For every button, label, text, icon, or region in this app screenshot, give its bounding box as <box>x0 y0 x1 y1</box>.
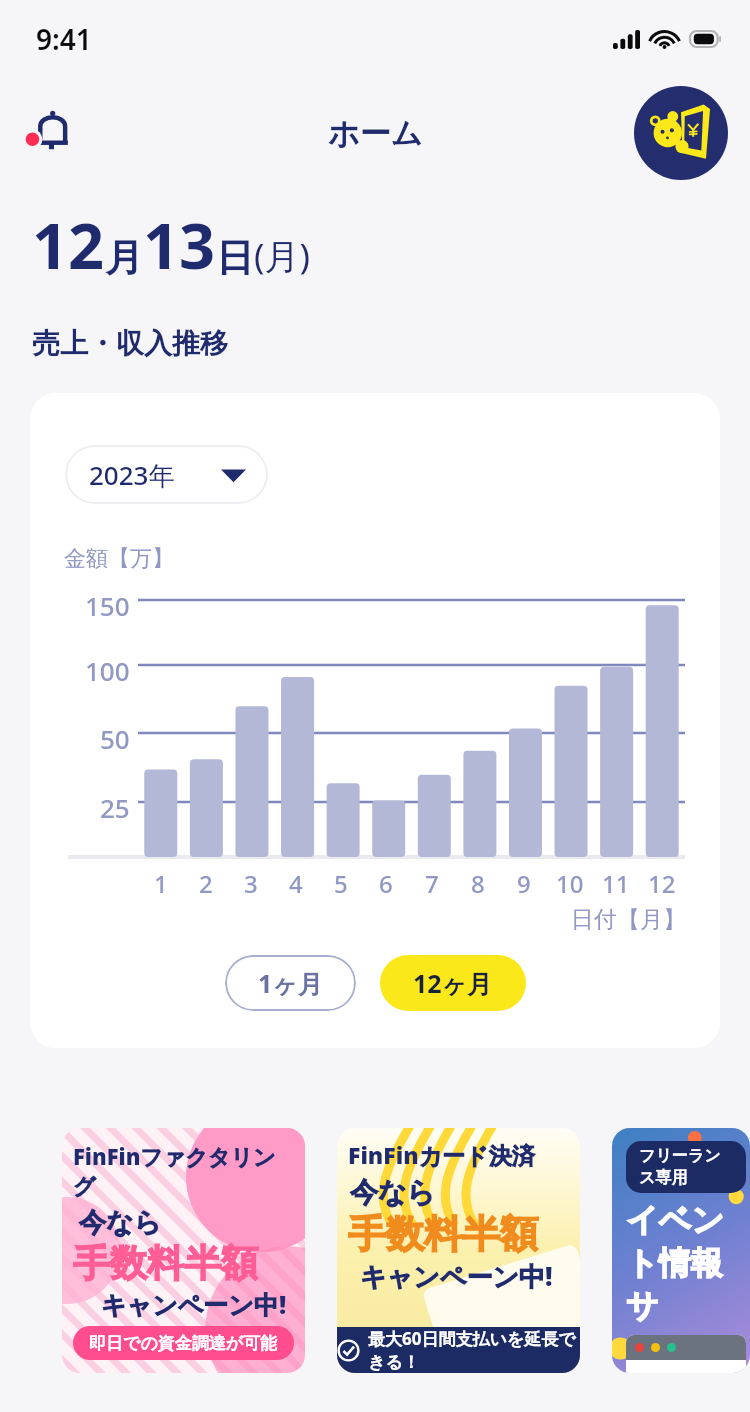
staticText: 1ヶ月 <box>258 966 323 1000</box>
staticText: イベント情報サ <box>626 1200 746 1327</box>
staticText: (月) <box>254 232 311 280</box>
staticText: 25 <box>100 790 130 825</box>
staticText: FinFinカード決済 <box>348 1139 535 1170</box>
staticText: 手数料半額 <box>73 1240 258 1287</box>
staticText: 2023年 <box>89 457 175 493</box>
button[interactable]: FinFinカード決済 <box>337 1128 580 1373</box>
staticText: 8 <box>471 867 485 900</box>
staticText: 9:41 <box>36 20 92 58</box>
staticText: 売上・収入推移 <box>32 326 228 361</box>
staticText: 12ヶ月 <box>413 966 493 1000</box>
staticText: 2 <box>199 867 213 900</box>
staticText: 10 <box>556 867 584 900</box>
staticText: 日付【月】 <box>571 905 686 934</box>
staticText: 5 <box>334 867 348 900</box>
button[interactable]: 1ヶ月 <box>225 955 356 1011</box>
button[interactable]: 2023年 <box>65 445 268 504</box>
staticText: 100 <box>85 653 130 688</box>
staticText: 12 <box>32 202 105 288</box>
staticText: 12 <box>648 867 676 900</box>
staticText: 3 <box>244 867 258 900</box>
staticText: 金額【万】 <box>64 545 174 573</box>
staticText: 7 <box>425 867 439 900</box>
staticText: キャンペーン中! <box>360 1258 553 1294</box>
button[interactable]: Notifications <box>12 95 88 171</box>
staticText: 9 <box>517 867 531 900</box>
staticText: 即日での資金調達が可能 <box>89 1333 278 1354</box>
staticText: 今なら <box>79 1206 162 1240</box>
staticText: 4 <box>289 867 303 900</box>
staticText: ＼ オススメ ／ <box>626 1369 746 1373</box>
staticText: 日 <box>216 234 254 282</box>
staticText: 最大60日間支払いを延長できる！ <box>368 1327 580 1373</box>
button[interactable]: Account <box>634 86 728 180</box>
staticText: 11 <box>602 867 630 900</box>
staticText: キャンペーン中! <box>101 1287 287 1321</box>
staticText: 13 <box>143 202 216 288</box>
button[interactable]: FinFinファクタリング <box>62 1128 305 1373</box>
staticText: 今なら <box>350 1175 436 1210</box>
staticText: 50 <box>100 721 130 756</box>
button[interactable]: フリーランス専用 <box>612 1128 750 1373</box>
staticText: フリーランス専用 <box>639 1146 733 1188</box>
staticText: 1 <box>154 867 168 900</box>
staticText: ホーム <box>328 114 423 153</box>
button[interactable]: 12ヶ月 <box>380 955 526 1011</box>
staticText: FinFinファクタリング <box>73 1141 294 1201</box>
staticText: 手数料半額 <box>348 1210 538 1258</box>
staticText: 6 <box>379 867 393 900</box>
staticText: 月 <box>105 234 143 282</box>
staticText: 150 <box>85 588 130 623</box>
